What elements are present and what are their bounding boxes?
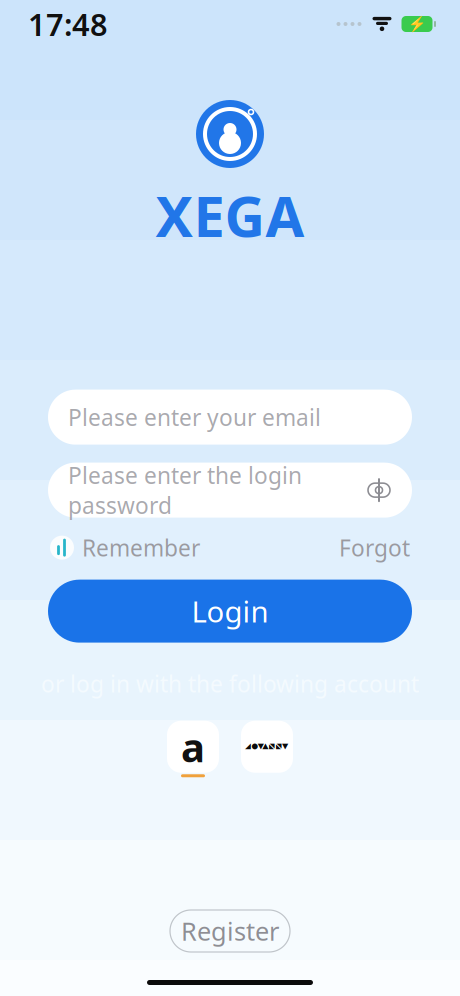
button[interactable]: Please enter your email bbox=[48, 390, 412, 445]
staticText: a bbox=[181, 720, 205, 773]
staticText: Forgot bbox=[339, 533, 410, 563]
staticText: 17:48 bbox=[28, 4, 108, 44]
button[interactable]: Sign in with Apple bbox=[241, 721, 293, 773]
button[interactable]: Login bbox=[48, 580, 412, 643]
staticText: Please enter your email bbox=[68, 402, 321, 432]
staticText: Remember bbox=[82, 533, 200, 563]
staticText:  bbox=[244, 726, 289, 768]
button[interactable]: Forgot bbox=[339, 533, 410, 563]
staticText: Please enter the login password bbox=[68, 460, 302, 520]
staticText: Login bbox=[191, 592, 268, 631]
staticText: or log in with the following account bbox=[41, 669, 419, 699]
staticText: XEGA bbox=[155, 178, 304, 252]
button[interactable]: Register bbox=[170, 910, 290, 952]
button[interactable]: Remember bbox=[50, 533, 200, 563]
staticText: Register bbox=[181, 914, 279, 948]
button[interactable]: Sign in with Amazon bbox=[167, 721, 219, 773]
staticText: ⚡ bbox=[408, 16, 426, 32]
button[interactable]: Please enter the login password bbox=[48, 463, 412, 518]
